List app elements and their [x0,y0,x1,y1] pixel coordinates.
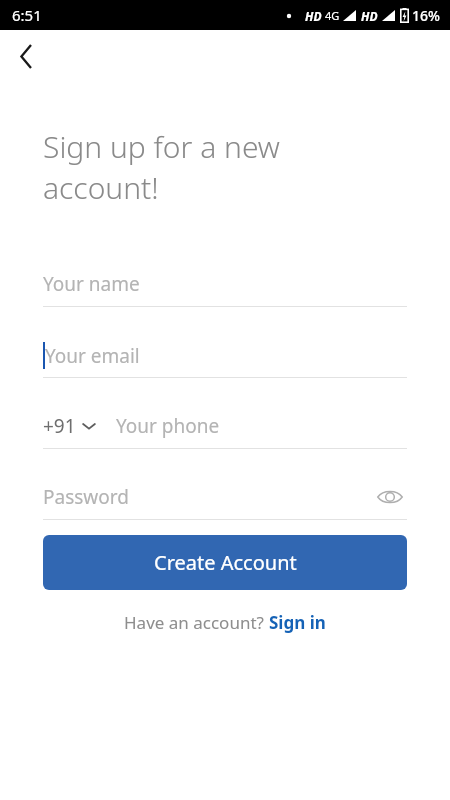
button[interactable]: Back [7,37,45,75]
staticText: +91 [43,413,76,439]
staticText: HD [361,8,378,24]
staticText: Your phone [116,413,220,439]
button[interactable]: Create Account [43,535,407,590]
button[interactable]: Your name [43,262,407,307]
button[interactable]: Your email [43,333,407,378]
staticText: Sign up for a new [43,126,280,167]
staticText: 6:51 [12,5,42,25]
staticText: Sign in [269,611,326,634]
staticText: Password [43,484,129,510]
staticText: 16% [412,6,440,25]
staticText: account! [43,167,159,208]
staticText: Create Account [154,549,297,576]
button[interactable]: Have an account? [43,611,407,634]
button[interactable]: Show password [373,480,407,514]
button[interactable]: Password [43,475,407,519]
staticText: 4G [325,8,340,23]
button[interactable]: +91 [43,404,407,449]
staticText: Have an account? [124,611,269,634]
staticText: Your email [45,343,140,369]
staticText: Your name [43,271,140,297]
staticText: HD [305,8,322,24]
